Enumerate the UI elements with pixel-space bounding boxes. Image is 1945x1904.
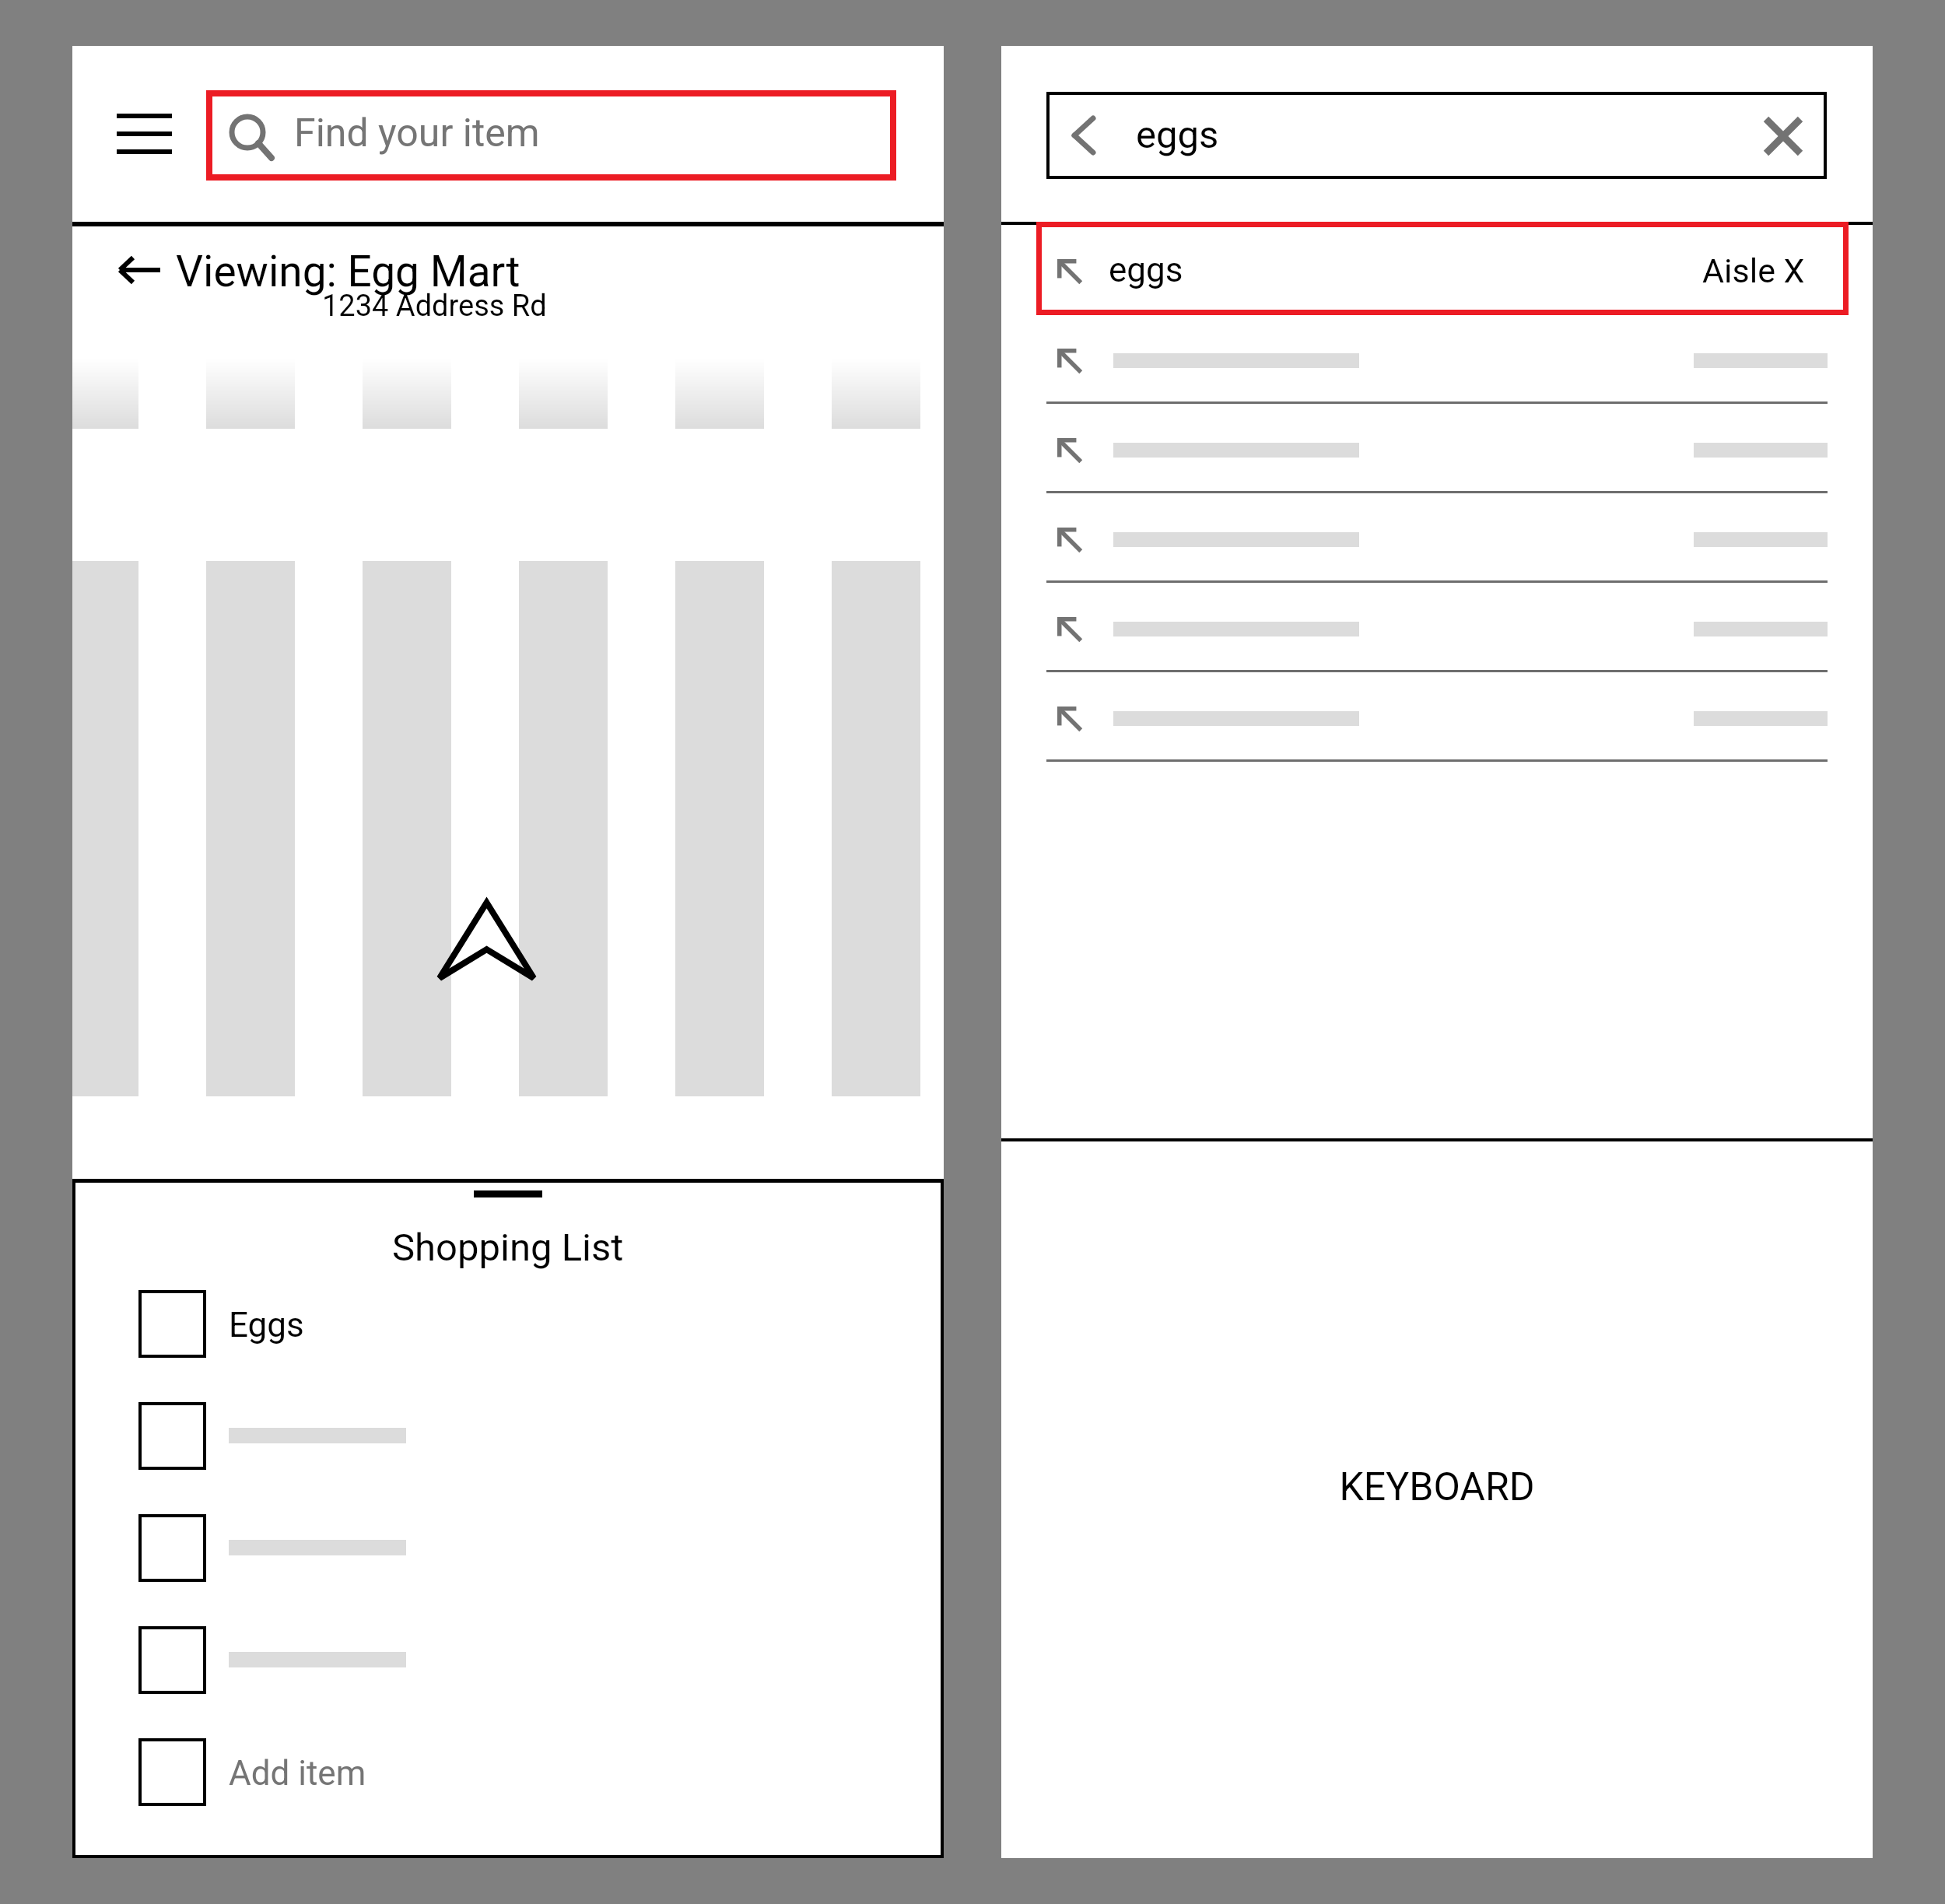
button[interactable]: Search suggestion 4 [1001,493,1873,583]
button[interactable]: Back [1064,109,1106,162]
staticText: eggs [1109,250,1183,290]
staticText: Find your item [294,110,540,156]
button[interactable]: Add item [72,1716,944,1828]
button[interactable]: Back [1046,92,1827,179]
button[interactable]: Back [113,247,164,293]
staticText: Shopping List [392,1226,624,1270]
button[interactable]: Search suggestion 5 [1001,583,1873,672]
button[interactable]: Search suggestion 6 [1001,672,1873,762]
button[interactable]: Find your item [206,90,896,181]
staticText: Add item [229,1753,366,1794]
staticText: Aisle X [1702,251,1805,290]
staticText: eggs [1136,113,1219,157]
staticText: 1234 Address Rd [322,289,547,324]
button[interactable]: Search suggestion 3 [1001,404,1873,493]
staticText: KEYBOARD [1001,1464,1873,1510]
button[interactable]: Clear search [1756,109,1810,163]
button[interactable]: Eggs [72,1268,944,1380]
button[interactable]: Menu [101,94,177,169]
button[interactable]: Search suggestion 2 [1001,314,1873,404]
button[interactable]: Shopping list item 2 [72,1380,944,1492]
button[interactable]: Shopping list item 4 [72,1604,944,1716]
staticText: Eggs [229,1305,304,1345]
staticText: Viewing: Egg Mart [176,247,520,296]
button[interactable]: eggs [1036,222,1849,315]
button[interactable]: Shopping list item 3 [72,1492,944,1604]
